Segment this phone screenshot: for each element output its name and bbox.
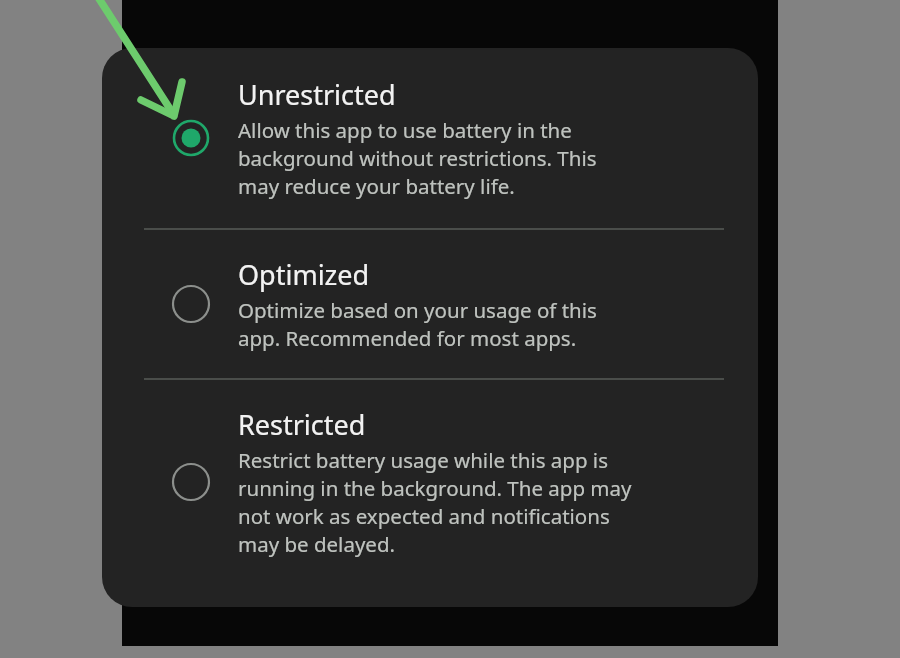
button[interactable]: Selected option <box>122 48 758 228</box>
button[interactable]: Unselected option <box>122 380 758 578</box>
other: Selected option <box>169 116 213 160</box>
staticText: Restrict battery usage while this app is… <box>238 446 632 558</box>
staticText: Optimize based on your usage of this app… <box>238 296 597 352</box>
staticText: Unrestricted <box>238 76 396 113</box>
staticText: Allow this app to use battery in the bac… <box>238 116 597 200</box>
other: Unselected option <box>169 460 213 504</box>
button[interactable]: Unselected option <box>122 230 758 378</box>
staticText: Optimized <box>238 256 370 293</box>
staticText: Restricted <box>238 406 366 443</box>
other: Unselected option <box>169 282 213 326</box>
